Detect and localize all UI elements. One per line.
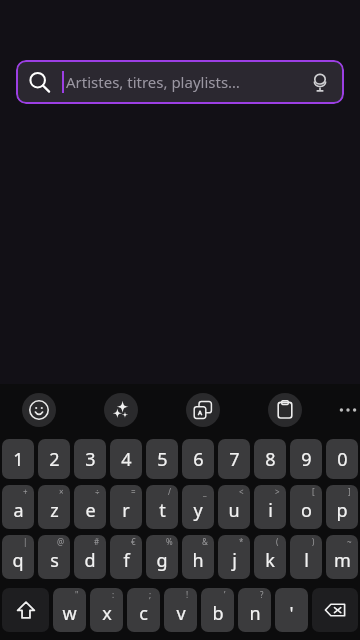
button[interactable]: 9 [290, 439, 322, 479]
button[interactable]: AI assist [104, 393, 138, 427]
other: Voice search [310, 72, 330, 92]
button[interactable]: z [38, 485, 70, 529]
staticText: 1 [13, 447, 24, 472]
staticText: ’ [224, 589, 226, 600]
staticText: ~ [347, 536, 352, 547]
staticText: × [59, 486, 64, 497]
button[interactable]: d [74, 535, 106, 579]
button[interactable]: 2 [38, 439, 70, 479]
staticText: % [166, 536, 173, 547]
staticText: : [112, 589, 115, 600]
staticText: | [23, 536, 28, 547]
staticText: 0 [337, 447, 348, 472]
staticText: # [94, 536, 100, 547]
button[interactable]: v [164, 588, 197, 632]
button[interactable]: 5 [146, 439, 178, 479]
button[interactable]: r [110, 485, 142, 529]
button[interactable]: f [110, 535, 142, 579]
button[interactable]: Emoji [22, 393, 56, 427]
staticText: ] [348, 486, 351, 497]
staticText: Artistes, titres, playlists… [66, 72, 240, 92]
button[interactable]: c [127, 588, 160, 632]
button[interactable]: Search [16, 60, 344, 104]
button[interactable]: b [201, 588, 234, 632]
button[interactable]: 1 [2, 439, 34, 479]
button[interactable]: Translate [186, 393, 220, 427]
staticText: ; [149, 589, 152, 600]
staticText: b [212, 601, 224, 626]
staticText: ) [312, 536, 315, 547]
button[interactable]: a [2, 485, 34, 529]
button[interactable]: i [254, 485, 286, 529]
button[interactable]: ' [275, 588, 308, 632]
button[interactable]: p [326, 485, 358, 529]
button[interactable]: g [146, 535, 178, 579]
staticText: " [75, 589, 79, 600]
button[interactable]: Clipboard [268, 393, 302, 427]
button[interactable]: n [238, 588, 271, 632]
button[interactable]: w [53, 588, 86, 632]
button[interactable]: y [182, 485, 214, 529]
staticText: 7 [229, 447, 240, 472]
button[interactable]: l [290, 535, 322, 579]
staticText: 8 [265, 447, 276, 472]
staticText: q [12, 548, 24, 573]
button[interactable]: k [254, 535, 286, 579]
staticText: y [193, 498, 203, 523]
button[interactable]: m [326, 535, 358, 579]
staticText: _ [203, 486, 207, 497]
staticText: > [275, 486, 280, 497]
staticText: i [268, 498, 273, 523]
staticText: p [336, 498, 348, 523]
other: Search [28, 71, 50, 93]
staticText: k [265, 548, 275, 573]
button[interactable]: u [218, 485, 250, 529]
staticText: * [239, 536, 244, 547]
staticText: 6 [193, 447, 204, 472]
button[interactable]: 0 [326, 439, 358, 479]
button[interactable]: 7 [218, 439, 250, 479]
staticText: v [176, 601, 186, 626]
staticText: h [192, 548, 204, 573]
staticText: l [304, 548, 309, 573]
staticText: x [102, 601, 112, 626]
staticText: / [168, 486, 171, 497]
staticText: c [139, 601, 148, 626]
staticText: @ [57, 536, 65, 547]
button[interactable]: o [290, 485, 322, 529]
button[interactable]: 6 [182, 439, 214, 479]
button[interactable]: s [38, 535, 70, 579]
staticText: m [334, 548, 351, 573]
button[interactable]: x [90, 588, 123, 632]
staticText: + [23, 486, 28, 497]
staticText: € [131, 536, 136, 547]
button[interactable]: 4 [110, 439, 142, 479]
button[interactable]: e [74, 485, 106, 529]
staticText: s [50, 548, 59, 573]
staticText: 2 [49, 447, 60, 472]
staticText: d [84, 548, 96, 573]
staticText: f [123, 548, 130, 573]
staticText: n [249, 601, 261, 626]
button[interactable]: q [2, 535, 34, 579]
staticText: ( [276, 536, 279, 547]
staticText: = [131, 486, 136, 497]
staticText: ! [186, 589, 189, 600]
button[interactable]: Shift [2, 588, 49, 632]
button[interactable]: t [146, 485, 178, 529]
staticText: o [301, 498, 312, 523]
button[interactable]: Backspace [312, 588, 358, 632]
button[interactable]: More options [336, 394, 360, 426]
button[interactable]: j [218, 535, 250, 579]
button[interactable]: 8 [254, 439, 286, 479]
staticText: 3 [85, 447, 96, 472]
staticText: u [228, 498, 240, 523]
staticText: < [239, 486, 244, 497]
staticText: t [159, 498, 166, 523]
staticText: & [202, 536, 208, 547]
staticText: z [50, 498, 59, 523]
button[interactable]: 3 [74, 439, 106, 479]
staticText: j [232, 548, 237, 573]
button[interactable]: h [182, 535, 214, 579]
staticText: ' [289, 601, 294, 626]
